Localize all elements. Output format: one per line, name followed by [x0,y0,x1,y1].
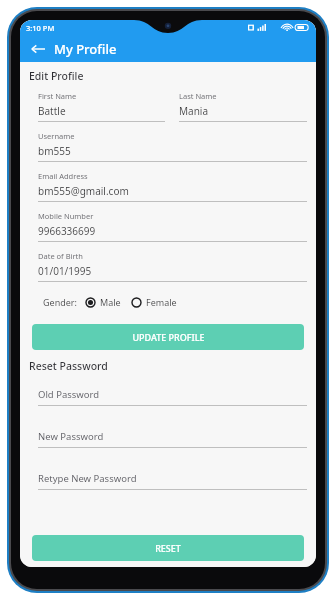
staticText: Old Password [38,388,100,401]
staticText: New Password [38,430,104,443]
staticText: 3:10 PM [26,23,55,33]
staticText: Battle [38,104,66,118]
staticText: Reset Password [29,359,108,373]
staticText: Gender: [43,296,77,308]
staticText: Last Name [179,91,217,101]
button[interactable]: Username [38,131,307,162]
staticText: Male [100,296,121,308]
button[interactable]: Female [131,296,177,308]
button[interactable]: First Name [38,91,165,122]
staticText: Date of Birth [38,251,83,261]
staticText: 9966336699 [38,224,96,238]
staticText: Edit Profile [29,69,84,83]
staticText: Email Address [38,171,88,181]
button[interactable]: Old Password [38,388,307,406]
button[interactable]: Retype New Password [38,472,307,490]
button[interactable]: RESET [32,535,304,561]
staticText: 01/01/1995 [38,264,92,278]
staticText: bm555@gmail.com [38,184,129,198]
button[interactable]: Last Name [179,91,307,122]
staticText: Retype New Password [38,472,137,485]
staticText: RESET [155,542,181,554]
button[interactable]: Date of Birth [38,251,307,282]
button[interactable]: Back [28,39,48,59]
staticText: Username [38,131,75,141]
staticText: First Name [38,91,77,101]
staticText: UPDATE PROFILE [132,331,205,343]
staticText: bm555 [38,144,71,158]
button[interactable]: Male [85,296,121,308]
button[interactable]: Mobile Number [38,211,307,242]
staticText: My Profile [54,40,117,58]
staticText: Mania [179,104,209,118]
button[interactable]: Email Address [38,171,307,202]
staticText: Mobile Number [38,211,94,221]
button[interactable]: New Password [38,430,307,448]
staticText: Female [146,296,177,308]
button[interactable]: UPDATE PROFILE [32,324,304,350]
